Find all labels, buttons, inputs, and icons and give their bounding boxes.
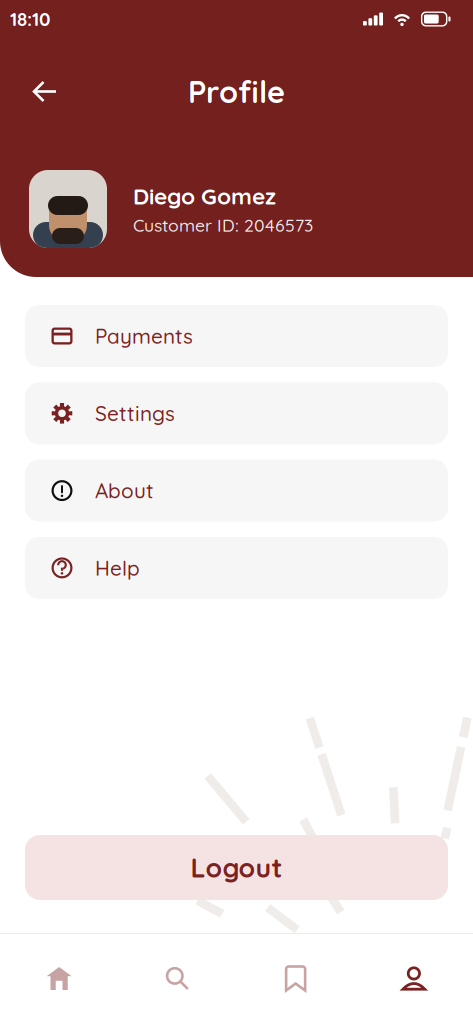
staticText: Help xyxy=(95,555,140,581)
staticText: 18:10 xyxy=(10,7,50,31)
staticText: About xyxy=(95,478,154,503)
staticText: Profile xyxy=(188,72,285,111)
button[interactable]: Settings xyxy=(25,382,448,444)
button[interactable]: Search xyxy=(118,944,236,1012)
staticText: Logout xyxy=(190,851,282,884)
staticText: Settings xyxy=(95,400,175,426)
button[interactable]: About xyxy=(25,460,448,522)
button[interactable]: Profile xyxy=(355,944,473,1012)
button[interactable]: Logout xyxy=(25,835,448,900)
staticText: Diego Gomez xyxy=(133,182,276,210)
staticText: Customer ID: 2046573 xyxy=(133,214,313,236)
button[interactable]: Payments xyxy=(25,305,448,367)
button[interactable]: Help xyxy=(25,537,448,599)
button[interactable]: Bookmarks xyxy=(236,944,355,1012)
button[interactable]: Home xyxy=(0,944,118,1012)
button[interactable]: Back xyxy=(23,71,67,112)
staticText: Payments xyxy=(95,323,193,349)
